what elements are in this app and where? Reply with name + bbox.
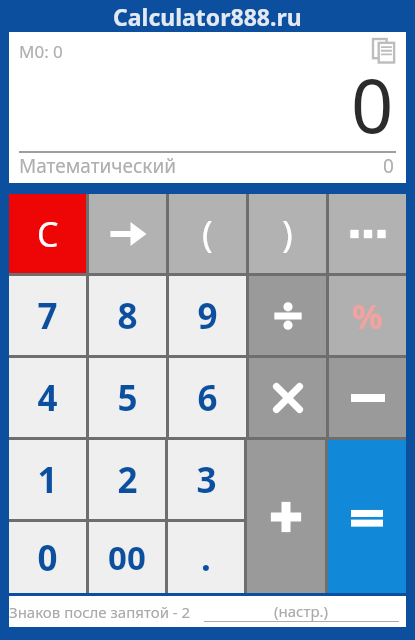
staticText: . (201, 534, 211, 582)
button[interactable]: 00 (89, 522, 165, 593)
button[interactable]: 4 (9, 358, 86, 437)
button[interactable]: 7 (9, 276, 86, 355)
staticText: (настр.) (274, 601, 329, 621)
button[interactable]: Divide (249, 276, 326, 355)
staticText: Знаков после запятой - 2 (9, 602, 191, 622)
button[interactable]: 2 (89, 440, 165, 519)
staticText: 8 (117, 292, 138, 340)
button[interactable]: 9 (169, 276, 246, 355)
button[interactable]: Percent (329, 276, 406, 355)
button[interactable]: Minus (329, 358, 406, 437)
button[interactable]: 8 (89, 276, 166, 355)
button[interactable]: 1 (9, 440, 86, 519)
staticText: % (352, 293, 383, 339)
staticText: 0 (383, 153, 394, 179)
button[interactable]: Equals (328, 440, 406, 593)
staticText: 3 (196, 456, 217, 504)
button[interactable]: . (168, 522, 244, 593)
staticText: 5 (117, 374, 138, 422)
button[interactable]: (настр.) (197, 601, 406, 622)
staticText: 7 (37, 292, 58, 340)
staticText: 4 (37, 374, 58, 422)
staticText: 0 (351, 54, 394, 155)
button[interactable]: 5 (89, 358, 166, 437)
button[interactable]: Backspace (89, 194, 166, 273)
staticText: 1 (37, 456, 58, 504)
staticText: Математический (19, 153, 177, 179)
button[interactable]: Multiply (249, 358, 326, 437)
staticText: M0: 0 (19, 40, 63, 63)
button[interactable]: Close parenthesis (249, 194, 326, 273)
staticText: 2 (117, 456, 138, 504)
button[interactable]: Copy result (371, 38, 397, 64)
button[interactable]: 0 (9, 522, 86, 593)
button[interactable]: More (329, 194, 406, 273)
staticText: 6 (197, 374, 218, 422)
button[interactable]: 6 (169, 358, 246, 437)
button[interactable]: Plus (247, 440, 325, 593)
staticText: ( (202, 209, 213, 258)
button[interactable]: Open parenthesis (169, 194, 246, 273)
button[interactable]: Clear (9, 194, 86, 273)
staticText: 00 (108, 535, 146, 580)
staticText: C (37, 211, 59, 257)
staticText: 0 (37, 534, 58, 582)
staticText: Calculator888.ru (113, 1, 302, 32)
staticText: ) (282, 209, 293, 258)
button[interactable]: 3 (168, 440, 244, 519)
staticText: 9 (197, 292, 218, 340)
